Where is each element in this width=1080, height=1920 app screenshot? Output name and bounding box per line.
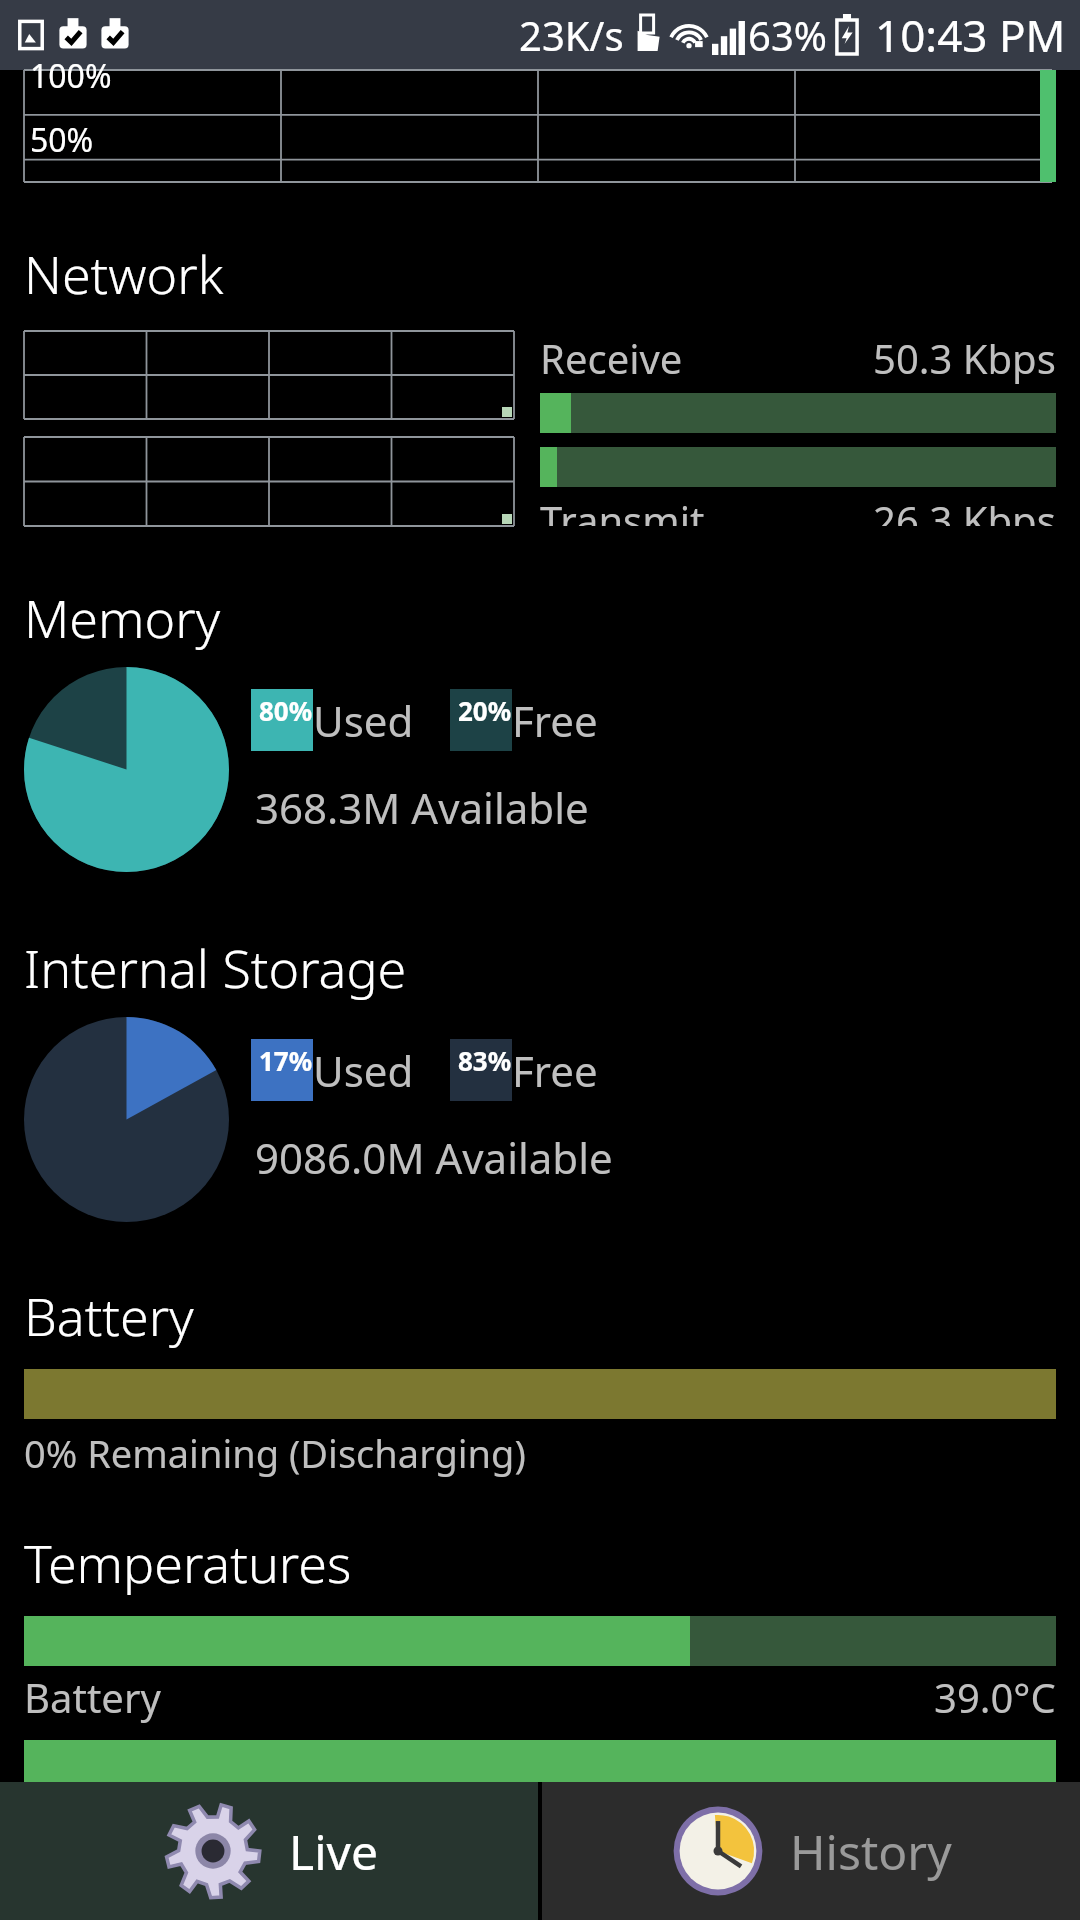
staticText: Network <box>24 238 224 309</box>
staticText: Battery <box>24 1280 194 1351</box>
staticText: 20% <box>458 693 512 728</box>
button[interactable]: History <box>542 1782 1080 1920</box>
staticText: 100% <box>30 54 112 98</box>
staticText: 80% <box>259 693 313 728</box>
staticText: 17% <box>259 1043 313 1078</box>
staticText: 9086.0M Available <box>255 1129 613 1186</box>
staticText: 63% <box>748 8 827 62</box>
staticText: 50% <box>30 118 94 162</box>
staticText: Temperatures <box>24 1527 352 1598</box>
staticText: 0% Remaining (Discharging) <box>24 1427 526 1479</box>
staticText: 39.0°C <box>934 1670 1056 1724</box>
staticText: Transmit <box>540 493 705 526</box>
other: Live <box>161 1799 265 1903</box>
button[interactable]: Live <box>0 1782 538 1920</box>
staticText: History <box>790 1819 952 1884</box>
staticText: Used <box>313 692 414 749</box>
staticText: Receive <box>540 331 683 385</box>
staticText: Live <box>289 1819 378 1884</box>
staticText: 368.3M Available <box>255 779 589 836</box>
staticText: Used <box>313 1042 414 1099</box>
staticText: Free <box>512 1042 598 1099</box>
staticText: 23K/s <box>519 8 624 62</box>
staticText: 10:43 PM <box>875 5 1066 65</box>
staticText: Battery <box>24 1670 161 1724</box>
staticText: Memory <box>24 582 221 653</box>
staticText: 50.3 Kbps <box>873 331 1056 385</box>
staticText: Free <box>512 692 598 749</box>
staticText: 26.3 Kbps <box>873 493 1056 526</box>
staticText: 83% <box>458 1043 512 1078</box>
staticText: Internal Storage <box>24 932 407 1003</box>
other: History <box>670 1803 766 1899</box>
